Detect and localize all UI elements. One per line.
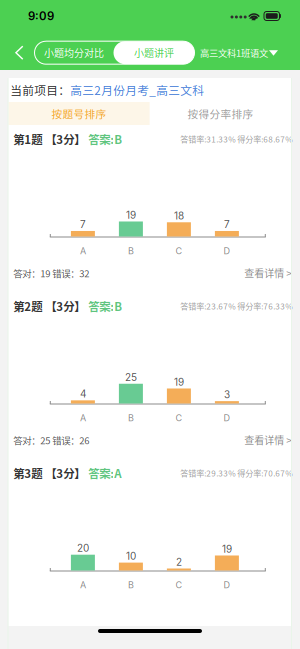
button[interactable]: 高三2月份月考_高三文科: [70, 81, 204, 98]
staticText: 答案:B: [85, 298, 122, 314]
staticText: 19: [126, 209, 136, 221]
button[interactable]: 按题号排序: [8, 102, 150, 125]
button[interactable]: 小题讲评: [113, 41, 194, 64]
staticText: 答错率:23.67% 得分率:76.33%: [180, 300, 292, 312]
staticText: D: [223, 245, 230, 256]
staticText: 4: [80, 388, 86, 400]
button[interactable]: 小题均分对比: [34, 41, 113, 64]
staticText: 3: [224, 389, 230, 401]
staticText: 查看详情 >: [244, 266, 292, 280]
staticText: 第2题 【3分】: [13, 298, 85, 314]
staticText: 7: [80, 218, 86, 230]
staticText: 按得分率排序: [188, 106, 254, 121]
staticText: 答错率:29.33% 得分率:70.67%: [180, 467, 292, 479]
staticText: 查看详情 >: [244, 433, 292, 447]
staticText: B: [128, 245, 134, 256]
staticText: D: [223, 412, 230, 423]
staticText: 答对：25 错误：26: [13, 433, 89, 447]
staticText: 7: [224, 218, 230, 230]
staticText: 第1题 【3分】: [13, 131, 85, 147]
staticText: B: [128, 412, 134, 423]
staticText: 小题均分对比: [44, 45, 104, 60]
staticText: C: [175, 412, 182, 423]
staticText: 答错率:31.33% 得分率:68.67%: [180, 133, 292, 145]
staticText: 20: [77, 542, 89, 554]
staticText: A: [80, 245, 86, 256]
staticText: 2: [176, 556, 182, 568]
staticText: 高三2月份月考_高三文科: [70, 81, 204, 98]
staticText: 高三文科1班语文: [200, 46, 268, 59]
button[interactable]: 按得分率排序: [150, 102, 291, 125]
staticText: 答案:B: [85, 131, 122, 147]
staticText: D: [223, 579, 230, 590]
staticText: A: [80, 579, 86, 590]
staticText: 25: [125, 371, 137, 383]
staticText: 答对：19 错误：32: [13, 266, 89, 280]
staticText: B: [128, 579, 134, 590]
button[interactable]: 查看详情 >: [244, 266, 292, 280]
staticText: 19: [174, 376, 184, 388]
staticText: 19: [222, 543, 232, 555]
staticText: 答案:A: [85, 465, 121, 481]
button[interactable]: 高三文科1班语文: [200, 44, 278, 62]
staticText: 9:09: [28, 9, 54, 23]
staticText: C: [175, 245, 182, 256]
staticText: C: [175, 579, 182, 590]
staticText: 小题讲评: [134, 45, 174, 60]
staticText: 当前项目：: [10, 81, 70, 98]
staticText: 18: [174, 210, 184, 222]
staticText: 按题号排序: [52, 106, 107, 121]
staticText: 10: [126, 550, 136, 562]
button[interactable]: Back: [5, 38, 33, 68]
staticText: A: [80, 412, 86, 423]
staticText: 第3题 【3分】: [13, 465, 85, 481]
button[interactable]: 查看详情 >: [244, 433, 292, 447]
